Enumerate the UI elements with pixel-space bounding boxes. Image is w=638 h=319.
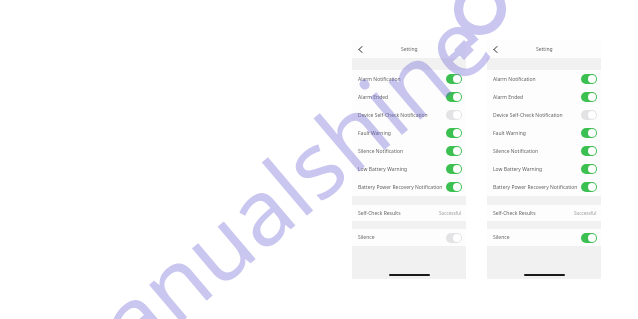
button[interactable]: Toggle on (446, 92, 462, 102)
button[interactable]: Silence (487, 229, 601, 246)
button[interactable]: Toggle on (446, 74, 462, 84)
staticText: Setting (401, 46, 418, 53)
staticText: Self-Check Results (493, 210, 574, 217)
staticText: Fault Warning (493, 130, 581, 137)
staticText: Device Self-Check Notification (358, 112, 446, 119)
staticText: Successful (574, 210, 597, 216)
staticText: Silence Notification (358, 148, 446, 155)
staticText: Silence Notification (493, 148, 581, 155)
button[interactable]: Toggle on (581, 164, 597, 174)
staticText: Battery Power Recovery Notification (493, 184, 581, 191)
button[interactable]: Toggle on (581, 92, 597, 102)
button[interactable]: Back (356, 45, 365, 54)
staticText: Fault Warning (358, 130, 446, 137)
button[interactable]: Toggle on (581, 128, 597, 138)
button[interactable]: Low Battery Warning (487, 160, 601, 178)
button[interactable]: Toggle on (446, 182, 462, 192)
button[interactable]: Back (491, 45, 500, 54)
button[interactable]: Toggle off (446, 233, 462, 243)
button[interactable]: Device Self-Check Notification (487, 106, 601, 124)
staticText: Silence (493, 234, 581, 241)
staticText: Alarm Notification (358, 76, 446, 83)
button[interactable]: Toggle off (446, 110, 462, 120)
staticText: Low Battery Warning (358, 166, 446, 173)
button[interactable]: Toggle on (581, 74, 597, 84)
button[interactable]: Alarm Notification (352, 70, 466, 88)
staticText: Self-Check Results (358, 210, 439, 217)
staticText: Device Self-Check Notification (493, 112, 581, 119)
staticText: Silence (358, 234, 446, 241)
staticText: Battery Power Recovery Notification (358, 184, 446, 191)
button[interactable]: Self-Check Results (487, 205, 601, 221)
button[interactable]: Silence (352, 229, 466, 246)
button[interactable]: Silence Notification (352, 142, 466, 160)
button[interactable]: Toggle on (446, 128, 462, 138)
button[interactable]: Toggle off (581, 110, 597, 120)
button[interactable]: Battery Power Recovery Notification (487, 178, 601, 196)
button[interactable]: Toggle on (581, 146, 597, 156)
button[interactable]: Alarm Notification (487, 70, 601, 88)
staticText: Alarm Ended (493, 94, 581, 101)
button[interactable]: Toggle on (446, 146, 462, 156)
button[interactable]: Alarm Ended (487, 88, 601, 106)
button[interactable]: Toggle on (581, 182, 597, 192)
staticText: Low Battery Warning (493, 166, 581, 173)
staticText: Successful (439, 210, 462, 216)
button[interactable]: Device Self-Check Notification (352, 106, 466, 124)
button[interactable]: Toggle on (581, 233, 597, 243)
button[interactable]: Silence Notification (487, 142, 601, 160)
staticText: manualshine (7, 0, 515, 319)
button[interactable]: Self-Check Results (352, 205, 466, 221)
button[interactable]: Alarm Ended (352, 88, 466, 106)
button[interactable]: Fault Warning (352, 124, 466, 142)
staticText: Setting (536, 46, 553, 53)
button[interactable]: Battery Power Recovery Notification (352, 178, 466, 196)
button[interactable]: Fault Warning (487, 124, 601, 142)
staticText: Alarm Notification (493, 76, 581, 83)
staticText: Alarm Ended (358, 94, 446, 101)
button[interactable]: Toggle on (446, 164, 462, 174)
button[interactable]: Low Battery Warning (352, 160, 466, 178)
